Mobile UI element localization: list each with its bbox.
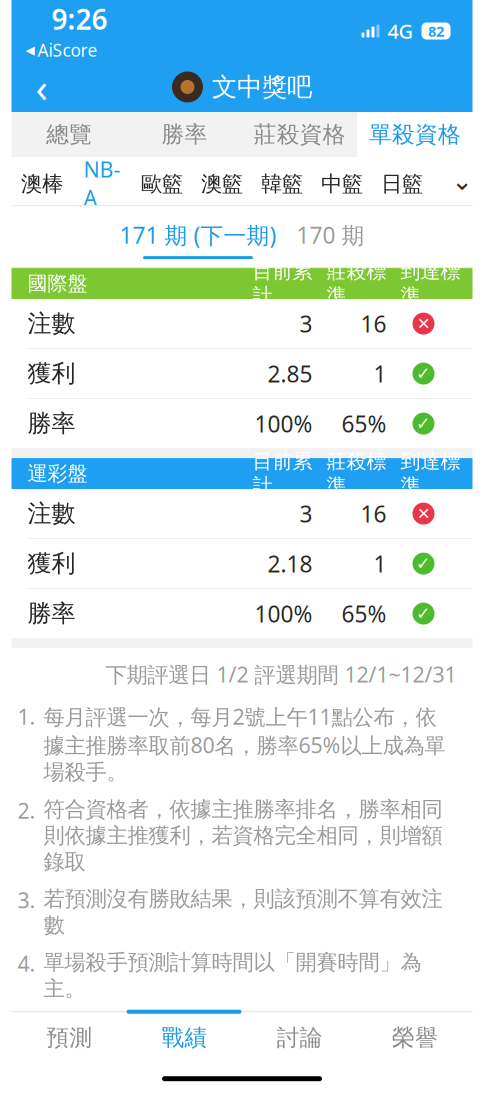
staticText: 4G bbox=[387, 18, 413, 44]
staticText: 莊殺標準 bbox=[326, 259, 386, 308]
button[interactable]: 勝率 bbox=[127, 112, 242, 157]
button[interactable]: 澳棒 bbox=[12, 157, 72, 205]
staticText: ‹ bbox=[35, 60, 47, 113]
button[interactable]: 榮譽 bbox=[357, 1014, 472, 1062]
button[interactable]: 171 期 (下一期) bbox=[119, 220, 276, 259]
staticText: 1 bbox=[373, 549, 386, 579]
staticText: 勝率 bbox=[27, 409, 75, 438]
staticText: 莊殺標準 bbox=[326, 449, 386, 498]
staticText: 9:26 bbox=[51, 0, 107, 38]
staticText: 到達標準 bbox=[400, 259, 460, 308]
staticText: ✓ bbox=[416, 414, 431, 433]
staticText: 目前累計 bbox=[252, 259, 312, 308]
staticText: 國際盤 bbox=[27, 271, 87, 296]
staticText: 單場殺手預測計算時間以「開賽時間」為主。 bbox=[43, 949, 421, 1002]
button[interactable]: 戰績 bbox=[127, 1014, 242, 1062]
button[interactable]: NBA bbox=[72, 157, 132, 205]
staticText: 澳棒 bbox=[21, 171, 63, 197]
button[interactable]: 韓籃 bbox=[252, 157, 312, 205]
staticText: 2.85 bbox=[267, 359, 312, 389]
staticText: 榮譽 bbox=[392, 1024, 438, 1052]
staticText: 日籃 bbox=[381, 171, 423, 197]
staticText: 3 bbox=[299, 309, 312, 339]
staticText: 1. bbox=[17, 702, 35, 731]
staticText: 16 bbox=[360, 499, 386, 529]
staticText: 到達標準 bbox=[400, 449, 460, 498]
button[interactable]: Show all leagues bbox=[440, 161, 484, 201]
staticText: 文中獎吧 bbox=[212, 71, 312, 102]
staticText: 16 bbox=[360, 309, 386, 339]
staticText: 1 bbox=[373, 359, 386, 389]
staticText: 2.18 bbox=[267, 549, 312, 579]
button[interactable]: Back bbox=[11, 62, 71, 112]
staticText: 82 bbox=[428, 21, 444, 41]
staticText: 171 期 (下一期) bbox=[119, 220, 276, 250]
staticText: 注數 bbox=[27, 499, 75, 528]
staticText: 170 期 bbox=[296, 220, 364, 250]
staticText: 4. bbox=[17, 949, 35, 978]
staticText: 戰績 bbox=[161, 1024, 207, 1052]
button[interactable]: 總覽 bbox=[11, 112, 127, 157]
staticText: ◀ bbox=[25, 43, 34, 57]
staticText: 2. bbox=[17, 796, 35, 825]
staticText: 100% bbox=[254, 409, 312, 439]
staticText: 澳籃 bbox=[201, 171, 243, 197]
staticText: 3 bbox=[299, 499, 312, 529]
staticText: 單殺資格 bbox=[369, 121, 461, 148]
staticText: NBA bbox=[83, 155, 120, 212]
staticText: 歐籃 bbox=[141, 171, 183, 197]
staticText: 莊殺資格 bbox=[254, 121, 346, 148]
button[interactable]: 日籃 bbox=[372, 157, 432, 205]
staticText: ✕ bbox=[417, 504, 430, 523]
staticText: 勝率 bbox=[27, 599, 75, 628]
staticText: 注數 bbox=[27, 309, 75, 338]
button[interactable]: 歐籃 bbox=[132, 157, 192, 205]
staticText: 目前累計 bbox=[252, 449, 312, 498]
button[interactable]: 中籃 bbox=[312, 157, 372, 205]
staticText: 符合資格者，依據主推勝率排名，勝率相同則依據主推獲利，若資格完全相同，則增額錄取 bbox=[43, 796, 442, 875]
staticText: 下期評選日 1/2 評選期間 12/1~12/31 bbox=[105, 660, 456, 688]
staticText: 65% bbox=[341, 409, 386, 439]
staticText: AiScore bbox=[37, 39, 97, 62]
button[interactable]: 預測 bbox=[11, 1014, 127, 1062]
staticText: 3. bbox=[17, 886, 35, 914]
staticText: 獲利 bbox=[27, 359, 75, 388]
button[interactable]: 170 期 bbox=[296, 220, 364, 259]
staticText: 每月評選一次，每月2號上午11點公布，依據主推勝率取前80名，勝率65%以上成為… bbox=[43, 702, 445, 785]
staticText: ⌄ bbox=[451, 167, 472, 195]
staticText: 若預測沒有勝敗結果，則該預測不算有效注數 bbox=[43, 886, 442, 938]
staticText: 65% bbox=[341, 599, 386, 629]
staticText: 中籃 bbox=[321, 171, 363, 197]
button[interactable]: 莊殺資格 bbox=[242, 112, 357, 157]
button[interactable]: 澳籃 bbox=[192, 157, 252, 205]
staticText: 預測 bbox=[46, 1024, 92, 1052]
staticText: 100% bbox=[254, 599, 312, 629]
staticText: ✕ bbox=[417, 314, 430, 333]
button[interactable]: 單殺資格 bbox=[357, 112, 472, 157]
staticText: 討論 bbox=[277, 1024, 323, 1052]
button[interactable]: 討論 bbox=[242, 1014, 357, 1062]
staticText: 總覽 bbox=[46, 121, 92, 148]
staticText: ✓ bbox=[416, 364, 431, 383]
staticText: ✓ bbox=[416, 554, 431, 573]
staticText: 獲利 bbox=[27, 549, 75, 578]
staticText: 運彩盤 bbox=[27, 461, 87, 486]
staticText: ✓ bbox=[416, 604, 431, 623]
staticText: 韓籃 bbox=[261, 171, 303, 197]
staticText: 勝率 bbox=[161, 121, 207, 148]
